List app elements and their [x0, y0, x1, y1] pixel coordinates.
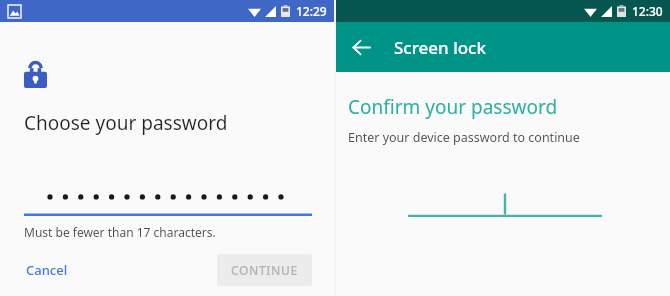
staticText: Enter your device password to continue — [348, 129, 580, 146]
staticText: 12:29 — [296, 3, 327, 19]
other: Lock — [24, 61, 47, 88]
staticText: Choose your password — [24, 110, 228, 136]
staticText: 12:30 — [632, 3, 663, 19]
staticText: Must be fewer than 17 characters. — [24, 224, 216, 240]
button[interactable]: CONTINUE — [217, 254, 312, 286]
staticText: Screen lock — [394, 36, 486, 59]
staticText: Confirm your password — [348, 94, 558, 120]
button[interactable]: Cancel — [24, 254, 70, 286]
button[interactable]: Back — [344, 30, 379, 65]
staticText: CONTINUE — [231, 262, 298, 278]
staticText: Cancel — [26, 261, 68, 279]
